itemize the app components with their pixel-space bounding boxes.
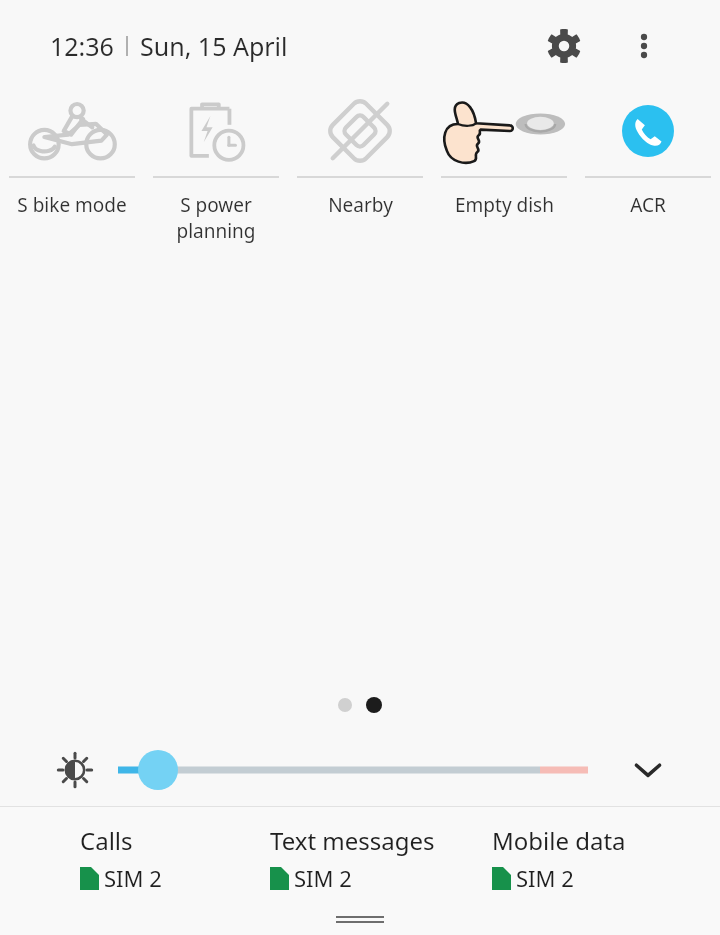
button[interactable]: S bike mode <box>0 86 144 218</box>
staticText: Text messages <box>270 824 435 857</box>
staticText: SIM 2 <box>294 863 352 893</box>
staticText: SIM 2 <box>516 863 574 893</box>
staticText: Calls <box>80 824 133 857</box>
button[interactable]: Nearby <box>288 86 432 218</box>
staticText: Mobile data <box>492 824 626 857</box>
button[interactable]: ACR <box>576 86 720 218</box>
staticText: S power planning <box>176 192 256 244</box>
button[interactable]: Mobile data <box>492 824 720 893</box>
button[interactable]: Brightness slider <box>118 742 588 798</box>
staticText: Sun, 15 April <box>140 29 288 63</box>
staticText: 12:36 <box>50 29 114 63</box>
button[interactable]: More options <box>616 18 672 74</box>
staticText: SIM 2 <box>104 863 162 893</box>
staticText: ACR <box>630 192 666 218</box>
staticText: Empty dish <box>455 192 554 218</box>
button[interactable]: S power planning <box>144 86 288 244</box>
staticText: Nearby <box>328 192 393 218</box>
button[interactable]: Brightness <box>46 741 104 799</box>
button[interactable]: Calls <box>80 824 240 893</box>
button[interactable]: Empty dish <box>432 86 576 218</box>
staticText: S bike mode <box>17 192 127 218</box>
button[interactable]: Text messages <box>270 824 480 893</box>
button[interactable]: Settings <box>534 16 594 76</box>
button[interactable]: Expand <box>618 740 678 800</box>
